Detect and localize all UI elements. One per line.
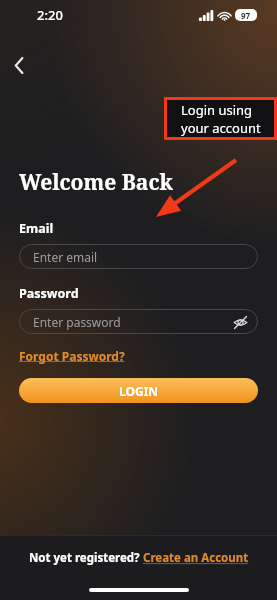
staticText: Welcome Back bbox=[19, 168, 173, 197]
staticText: your account bbox=[181, 119, 261, 137]
staticText: 2:20 bbox=[37, 6, 63, 24]
staticText: Email bbox=[19, 220, 54, 237]
staticText: Login using bbox=[181, 101, 253, 119]
button[interactable]: Enter password bbox=[19, 309, 258, 334]
staticText: LOGIN bbox=[119, 383, 159, 399]
button[interactable]: Show password bbox=[230, 312, 250, 332]
staticText: 97 bbox=[241, 10, 251, 21]
button[interactable]: Enter email bbox=[19, 244, 258, 269]
staticText: Enter password bbox=[33, 314, 121, 330]
button[interactable]: LOGIN bbox=[19, 378, 258, 403]
staticText: Not yet registered? bbox=[29, 550, 143, 566]
staticText: Password bbox=[19, 285, 79, 302]
button[interactable]: Back bbox=[4, 50, 34, 80]
button[interactable]: Create an Account bbox=[143, 550, 249, 566]
button[interactable]: Forgot Password? bbox=[19, 348, 125, 364]
staticText: Create an Account bbox=[143, 550, 249, 566]
staticText: Forgot Password? bbox=[19, 348, 125, 364]
staticText: Enter email bbox=[33, 249, 98, 265]
